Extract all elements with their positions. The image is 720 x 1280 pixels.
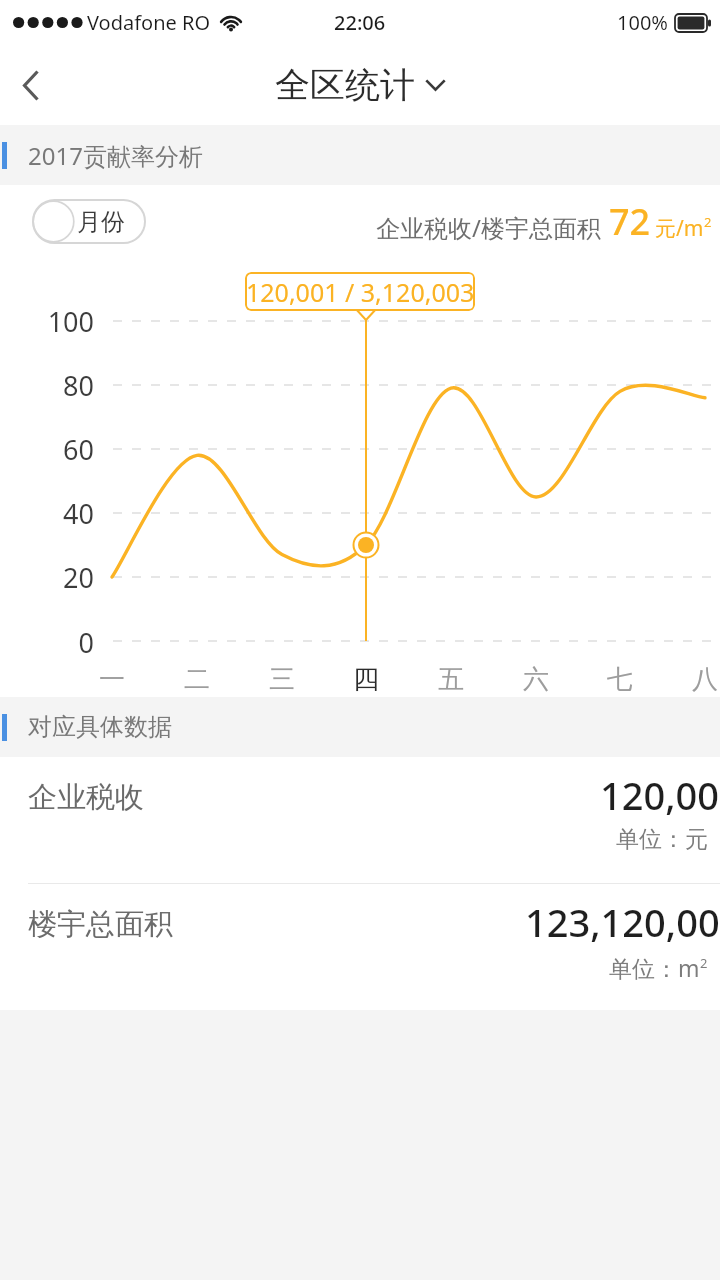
staticText: 72	[609, 197, 651, 246]
staticText: 22:06	[334, 9, 386, 36]
staticText: 六	[523, 663, 549, 696]
staticText: 楼宇总面积	[28, 906, 173, 943]
button[interactable]: 月份	[32, 199, 146, 244]
button[interactable]: 120,001 / 3,120,003	[245, 272, 475, 311]
staticText: 2	[700, 954, 708, 972]
staticText: 企业税收/楼宇总面积	[376, 211, 601, 244]
staticText: 企业税收	[28, 779, 144, 816]
button[interactable]: 企业税收	[0, 757, 720, 883]
staticText: 全区统计	[275, 63, 415, 107]
staticText: 40	[63, 495, 94, 531]
staticText: 80	[63, 367, 94, 403]
staticText: 60	[63, 431, 94, 467]
staticText: 100	[47, 303, 94, 339]
staticText: 123,120,00	[525, 896, 720, 948]
staticText: 八	[692, 663, 718, 696]
staticText: 月份	[77, 207, 125, 237]
staticText: 七	[607, 663, 633, 696]
staticText: 对应具体数据	[28, 712, 172, 742]
staticText: 100%	[617, 9, 668, 36]
staticText: 2	[704, 213, 712, 231]
button[interactable]: 全区统计	[275, 63, 446, 107]
staticText: 120,001 / 3,120,003	[246, 275, 475, 309]
staticText: 元/m	[655, 214, 704, 243]
staticText: 一	[99, 663, 125, 696]
staticText: 单位：元	[616, 825, 708, 854]
staticText: Vodafone RO	[87, 9, 211, 36]
staticText: 120,00	[600, 769, 720, 821]
staticText: 三	[269, 663, 295, 696]
staticText: 单位：m	[609, 952, 700, 983]
staticText: 0	[78, 624, 94, 660]
staticText: 二	[184, 663, 210, 696]
button[interactable]: 楼宇总面积	[0, 884, 720, 1010]
button[interactable]: Back	[0, 54, 62, 116]
staticText: 五	[438, 663, 464, 696]
staticText: 四	[353, 663, 379, 696]
staticText: 2017贡献率分析	[28, 139, 203, 172]
staticText: 20	[63, 559, 94, 595]
